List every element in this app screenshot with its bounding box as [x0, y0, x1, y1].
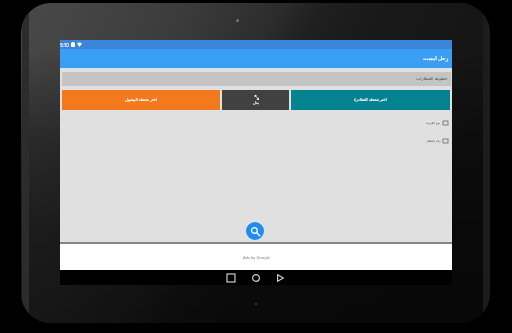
button[interactable]: Swap stations	[222, 90, 289, 110]
staticText: خطوط القطارات	[416, 75, 448, 81]
button[interactable]: اختر محطة المغادرة	[291, 90, 450, 110]
staticText: نوع العربية	[426, 121, 441, 125]
button[interactable]: Back	[269, 270, 291, 285]
staticText: Ads by Google	[243, 255, 270, 260]
staticText: 5:10	[60, 42, 69, 48]
staticText: بدل	[253, 101, 259, 105]
button[interactable]: Ads by Google	[60, 244, 452, 270]
button[interactable]: Recents	[220, 270, 242, 285]
staticText: اختر محطة الوصول	[125, 97, 157, 102]
button[interactable]: Home	[245, 270, 267, 285]
button[interactable]: رحل ايجبت	[60, 49, 452, 68]
staticText: رحل ايجبت	[423, 54, 449, 61]
button[interactable]: خطوط القطارات	[62, 72, 451, 86]
staticText: رقم القطار	[426, 139, 441, 143]
button[interactable]: Search	[246, 222, 264, 240]
button[interactable]: رقم القطار	[60, 137, 448, 145]
button[interactable]: اختر محطة الوصول	[62, 90, 220, 110]
button[interactable]: نوع العربية	[60, 119, 448, 127]
staticText: اختر محطة المغادرة	[354, 97, 387, 102]
